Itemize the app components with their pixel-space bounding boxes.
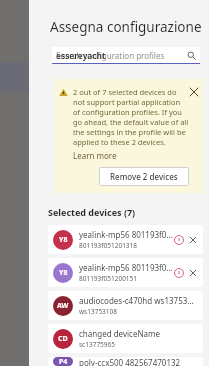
staticText: CD — [58, 334, 68, 344]
button[interactable]: Warning — [174, 268, 184, 278]
staticText: ws13753108 — [79, 307, 117, 316]
staticText: poly-ccx500 482567470132 — [79, 357, 181, 366]
button[interactable]: Remove 2 devices — [99, 167, 189, 186]
staticText: 801193f051201318 — [79, 241, 138, 250]
staticText: essereyacht — [56, 50, 106, 62]
button[interactable]: Remove device — [188, 235, 198, 245]
staticText: changed deviceName — [79, 328, 160, 339]
staticText: Search configuration profiles — [56, 50, 165, 61]
staticText: audiocodes-c470hd ws13753108 — [79, 295, 198, 306]
staticText: Assegna configurazione — [50, 18, 202, 36]
staticText: Selected devices (7) — [48, 206, 136, 218]
staticText: Learn more — [73, 150, 117, 161]
button[interactable]: Warning — [174, 235, 184, 245]
button[interactable]: Search configuration profiles — [52, 47, 200, 64]
staticText: yealink-mp56 801193f05... — [79, 229, 174, 240]
button[interactable]: Learn more — [73, 150, 117, 161]
button[interactable]: Remove device — [188, 268, 198, 278]
button[interactable]: P4 — [48, 357, 203, 366]
staticText: 801193f051200151 — [79, 274, 138, 283]
staticText: Y8 — [59, 268, 68, 278]
button[interactable]: Y8 — [48, 225, 203, 254]
button[interactable]: CD — [48, 324, 203, 353]
staticText: sc13775965 — [79, 340, 115, 349]
staticText: Remove 2 devices — [110, 171, 178, 182]
staticText: Y8 — [59, 235, 68, 245]
button[interactable]: Y8 — [48, 258, 203, 287]
staticText: 2 out of 7 selected devices do not suppo… — [73, 87, 189, 147]
button[interactable]: Close warning — [189, 87, 199, 97]
staticText: AW — [57, 301, 69, 311]
staticText: P4 — [59, 357, 68, 366]
button[interactable]: AW — [48, 291, 203, 320]
staticText: yealink-mp56 801193f05... — [79, 262, 174, 273]
